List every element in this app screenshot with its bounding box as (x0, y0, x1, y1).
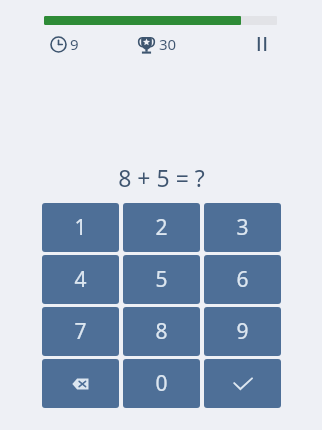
button[interactable]: 3 (204, 203, 281, 252)
button[interactable]: 6 (204, 255, 281, 304)
button[interactable]: Pause (248, 32, 276, 56)
staticText: 8 + 5 = ? (118, 162, 205, 193)
staticText: 4 (74, 265, 87, 294)
button[interactable]: 0 (123, 359, 200, 408)
button[interactable]: 8 (123, 307, 200, 356)
button[interactable]: Backspace (42, 359, 119, 408)
staticText: 1 (74, 213, 87, 242)
button[interactable]: 2 (123, 203, 200, 252)
button[interactable]: 9 (204, 307, 281, 356)
staticText: 0 (155, 369, 168, 398)
button[interactable]: 4 (42, 255, 119, 304)
button[interactable]: 9 (48, 33, 81, 55)
staticText: 5 (155, 265, 168, 294)
staticText: 30 (159, 34, 177, 54)
staticText: 8 (155, 317, 168, 346)
button[interactable]: 30 (135, 32, 179, 56)
staticText: 9 (70, 34, 79, 54)
staticText: 3 (236, 213, 249, 242)
staticText: 2 (155, 213, 168, 242)
staticText: 9 (236, 317, 249, 346)
staticText: 7 (74, 317, 87, 346)
button[interactable]: 1 (42, 203, 119, 252)
button[interactable]: 7 (42, 307, 119, 356)
staticText: 6 (236, 265, 249, 294)
button[interactable]: Submit (204, 359, 281, 408)
button[interactable]: 5 (123, 255, 200, 304)
